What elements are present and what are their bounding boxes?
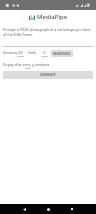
staticText: 0: [41, 50, 48, 55]
button[interactable]: Back: [12, 204, 36, 214]
staticText: RANDOMIZE: [53, 52, 71, 56]
button[interactable]: GENERATE: [3, 71, 93, 79]
staticText: iterations: [35, 63, 50, 67]
staticText: MediaPipe: [37, 13, 68, 21]
button[interactable]: Home: [36, 204, 60, 214]
staticText: Display after every: [3, 63, 31, 67]
staticText: GENERATE: [40, 73, 56, 77]
button[interactable]: Recent apps: [60, 204, 84, 214]
staticText: Iterations:: [3, 51, 18, 55]
staticText: 20: [17, 50, 24, 55]
button[interactable]: RANDOMIZE: [51, 50, 73, 57]
staticText: Seed:: [28, 51, 36, 55]
staticText: 5: [32, 63, 35, 68]
staticText: Prompt: a DSLR photograph of a cat loung…: [3, 27, 93, 37]
